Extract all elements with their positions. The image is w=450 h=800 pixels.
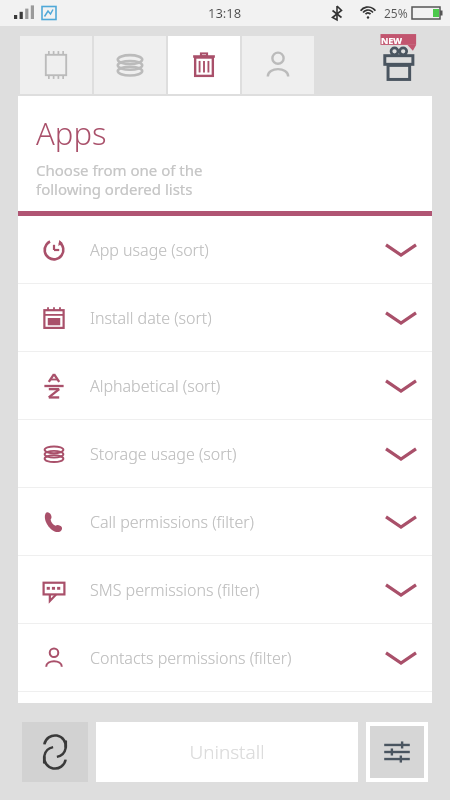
button[interactable]: Alphabetical (sort)	[18, 352, 432, 419]
button[interactable]: Filter settings	[370, 726, 424, 778]
staticText: App usage (sort)	[90, 239, 370, 261]
staticText: SMS permissions (filter)	[90, 579, 370, 601]
staticText: Call permissions (filter)	[90, 511, 370, 533]
staticText: Alphabetical (sort)	[90, 375, 370, 397]
button[interactable]: Contacts permissions (filter)	[18, 624, 432, 691]
button[interactable]: Permissions	[242, 36, 314, 94]
staticText: Apps	[36, 112, 107, 154]
staticText: Storage usage (sort)	[90, 443, 370, 465]
button[interactable]: Call permissions (filter)	[18, 488, 432, 555]
button[interactable]: Device	[20, 36, 92, 94]
staticText: Choose from one of the following ordered…	[36, 160, 203, 199]
button[interactable]: New gifts	[374, 33, 428, 87]
staticText: Install date (sort)	[90, 307, 370, 329]
staticText: 13:18	[208, 4, 242, 22]
staticText: Contacts permissions (filter)	[90, 647, 370, 669]
staticText: 25%	[384, 5, 408, 21]
button[interactable]: Refresh	[22, 722, 88, 782]
staticText: NEW	[381, 34, 403, 46]
button[interactable]: Install date (sort)	[18, 284, 432, 351]
button[interactable]: Uninstall	[96, 722, 358, 782]
button[interactable]: App usage (sort)	[18, 216, 432, 283]
button[interactable]: Storage usage (sort)	[18, 420, 432, 487]
button[interactable]: Uninstall	[168, 36, 240, 94]
button[interactable]: SMS permissions (filter)	[18, 556, 432, 623]
staticText: Uninstall	[189, 739, 265, 765]
button[interactable]: Storage	[94, 36, 166, 94]
